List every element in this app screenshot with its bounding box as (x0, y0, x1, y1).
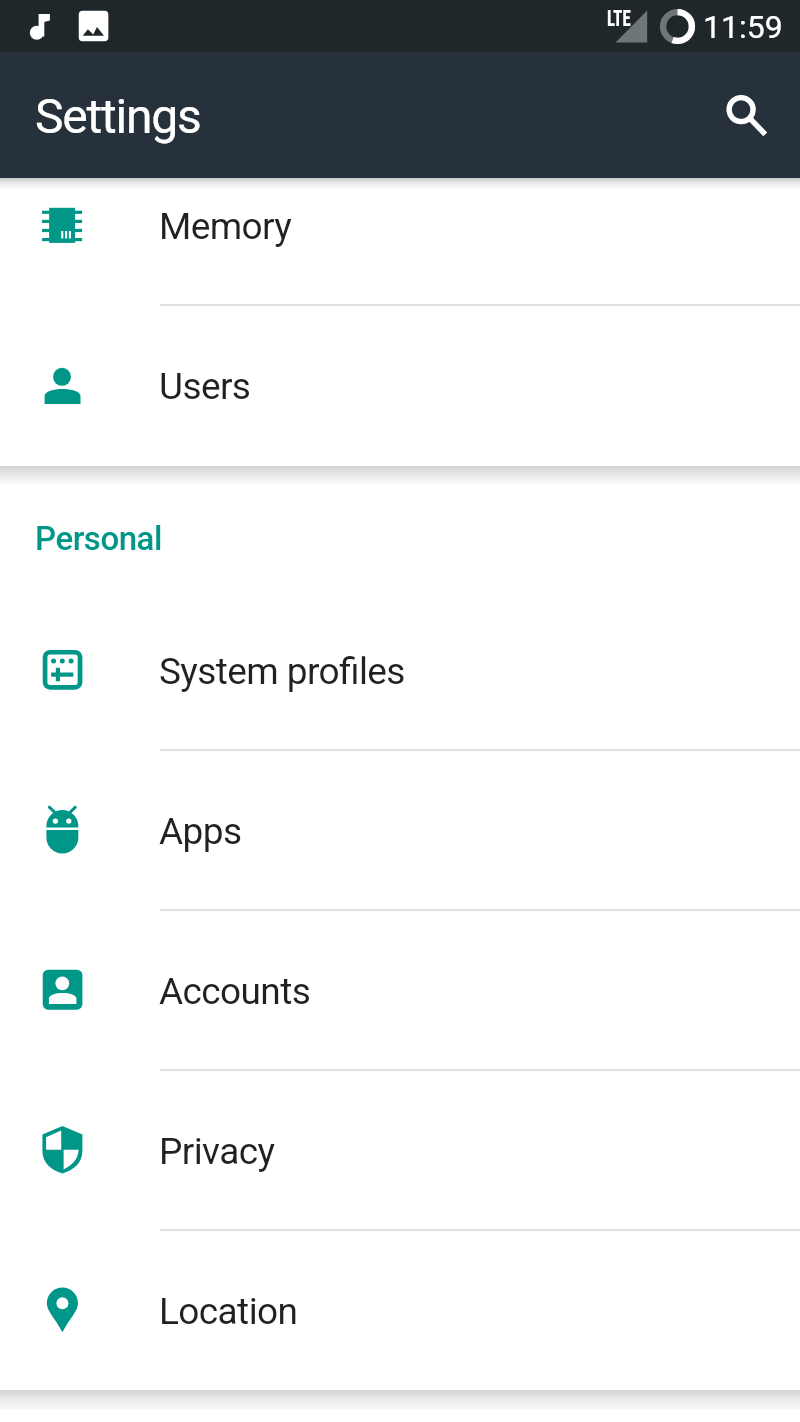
button[interactable]: Apps (0, 749, 800, 909)
button[interactable]: Privacy (0, 1069, 800, 1229)
staticText: Users (159, 365, 251, 408)
button[interactable]: System profiles (0, 589, 800, 749)
button[interactable]: Users (0, 304, 800, 464)
staticText: Location (159, 1290, 298, 1333)
button[interactable]: Accounts (0, 909, 800, 1069)
staticText: Settings (35, 88, 201, 144)
staticText: Accounts (159, 970, 311, 1013)
staticText: Privacy (159, 1130, 275, 1173)
button[interactable]: Search (704, 77, 780, 153)
button[interactable]: Location (0, 1229, 800, 1389)
staticText: Personal (35, 519, 162, 558)
staticText: Apps (159, 810, 242, 853)
staticText: Memory (159, 205, 292, 248)
staticText: LTE (607, 6, 631, 32)
button[interactable]: Memory (0, 144, 800, 304)
staticText: 11:59 (703, 8, 783, 46)
staticText: System profiles (159, 650, 405, 693)
